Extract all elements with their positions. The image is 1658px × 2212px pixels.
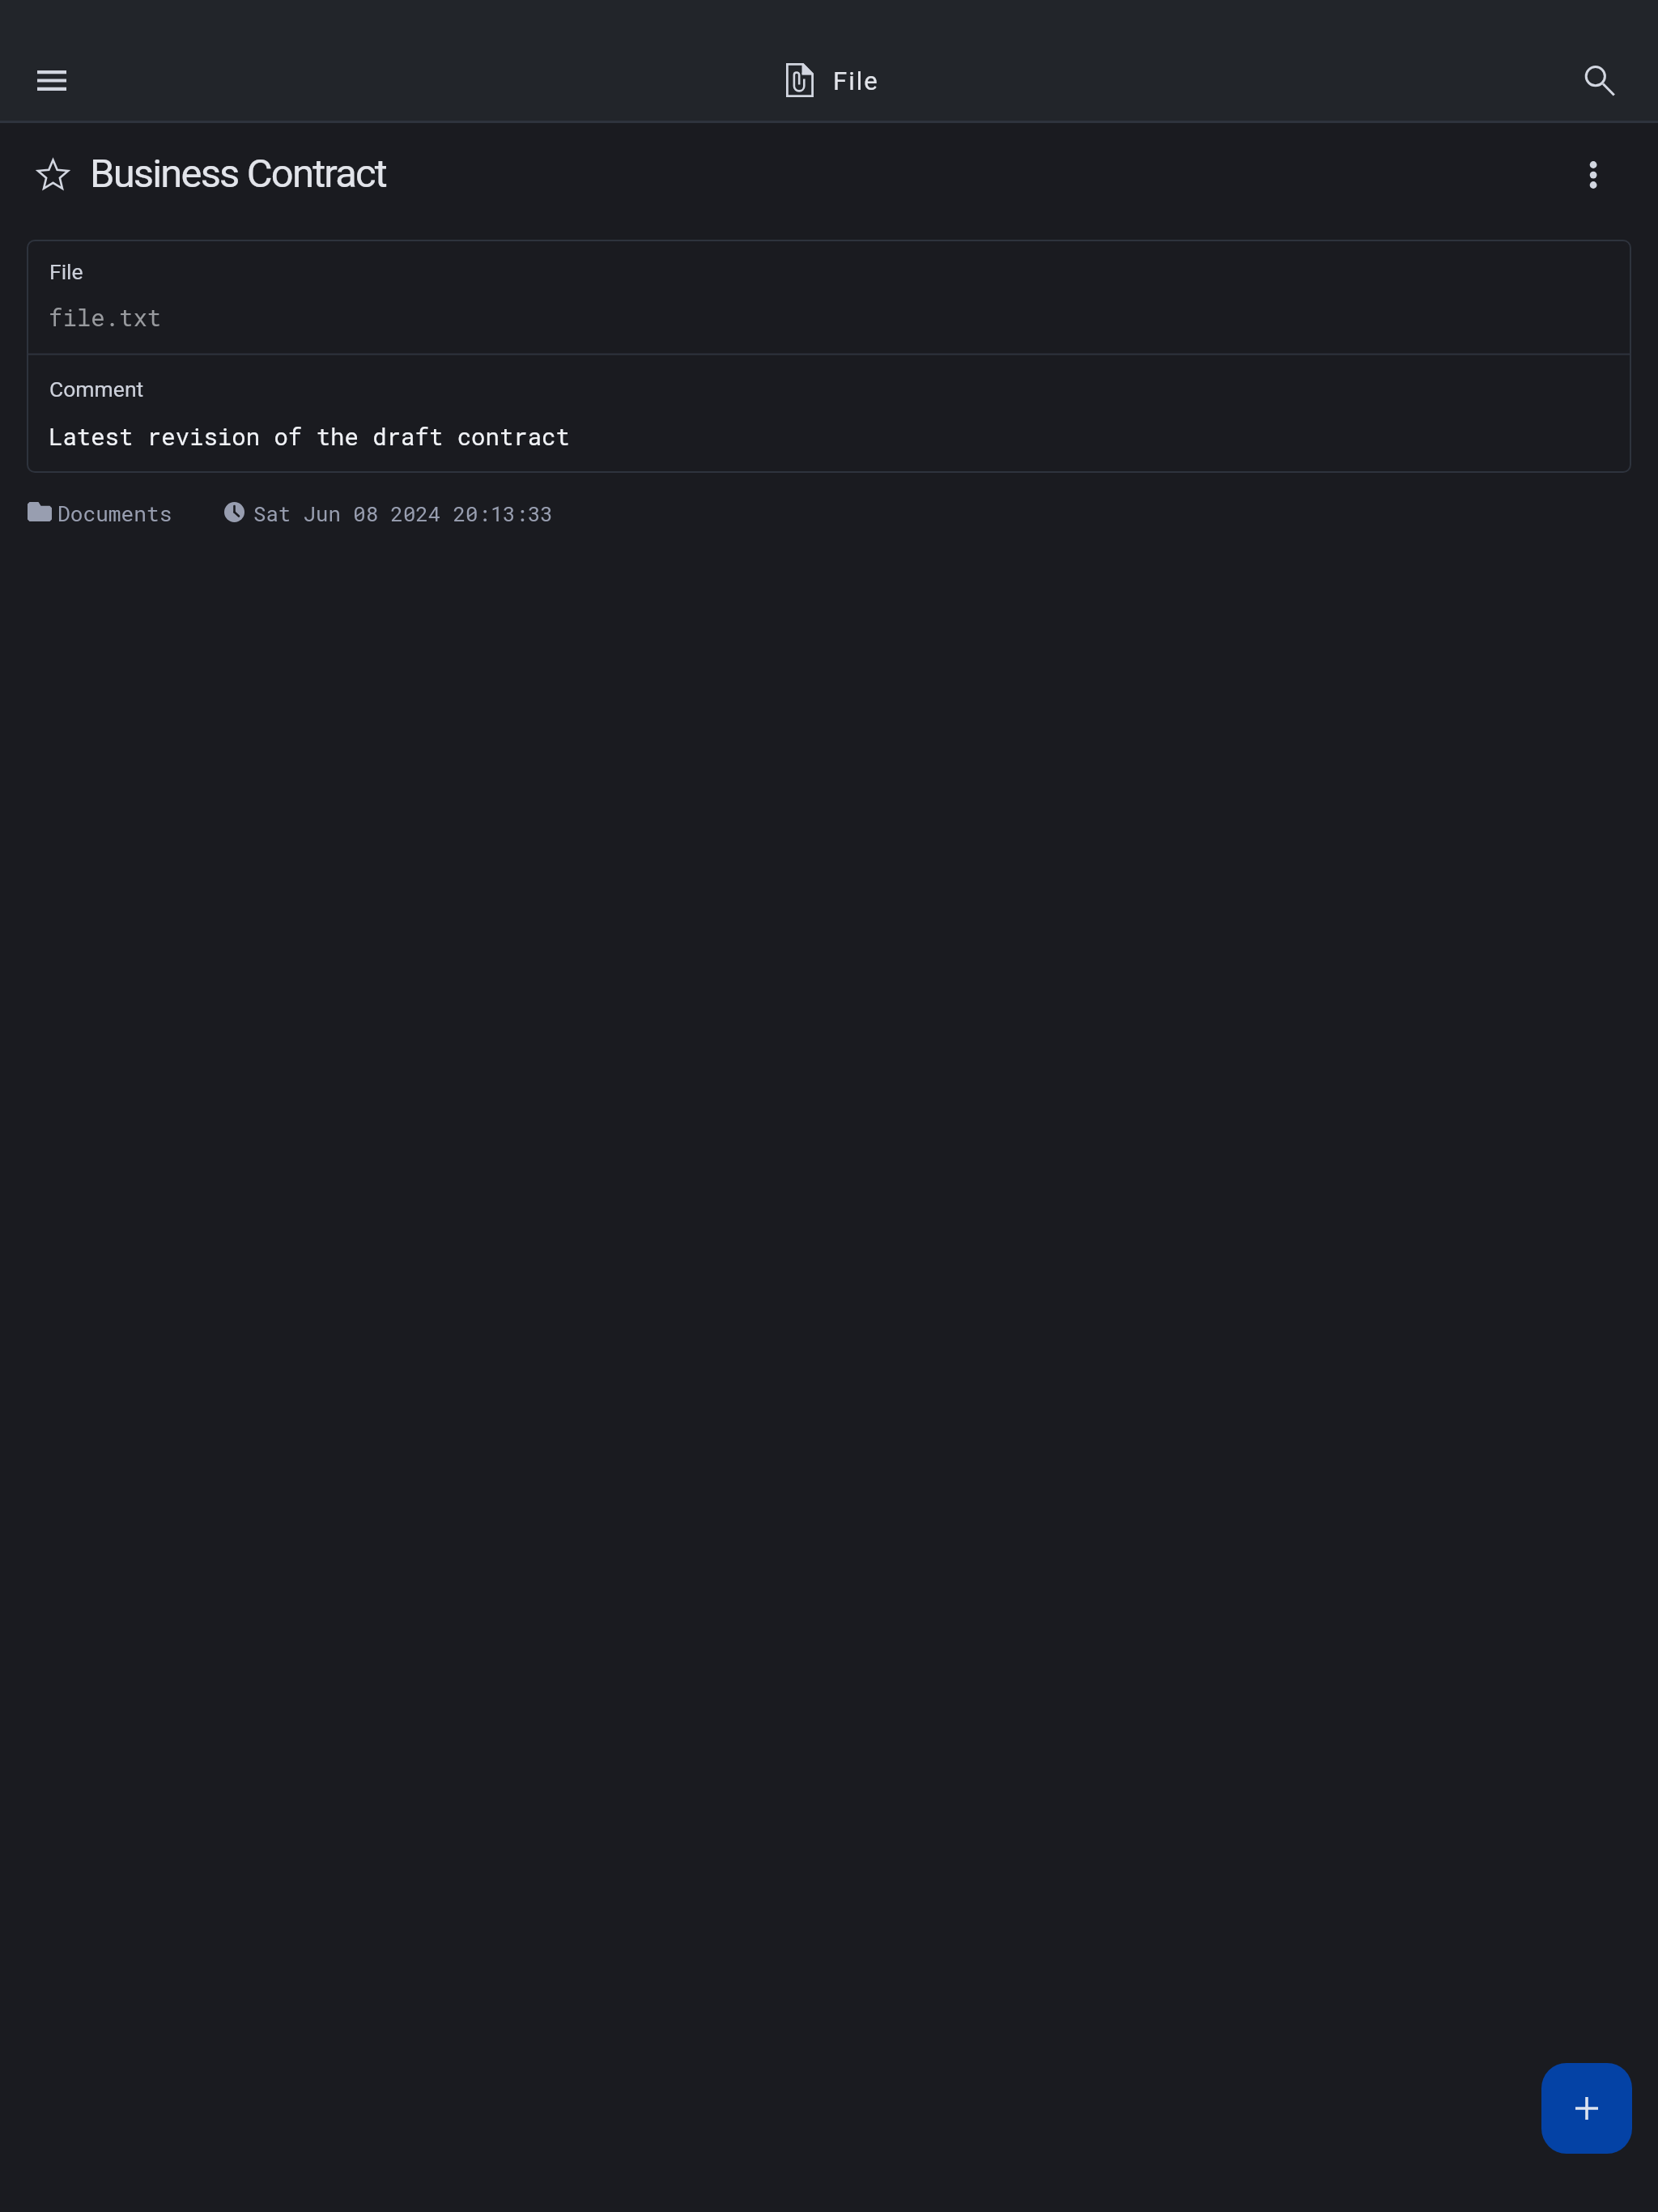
staticText: File	[49, 259, 83, 284]
button[interactable]: Favourite	[20, 143, 85, 207]
button[interactable]: Add	[1541, 2063, 1632, 2154]
staticText: Comment	[49, 376, 144, 402]
button[interactable]: More options	[1561, 143, 1626, 207]
staticText: file.txt	[49, 302, 162, 333]
button[interactable]: Open navigation menu	[22, 50, 82, 111]
staticText: Documents	[57, 500, 172, 528]
staticText: File	[833, 66, 879, 96]
staticText: Business Contract	[90, 151, 386, 197]
staticText: Sat Jun 08 2024 20:13:33	[253, 500, 553, 527]
staticText: Latest revision of the draft contract	[49, 421, 570, 452]
button[interactable]: Search	[1569, 46, 1629, 106]
